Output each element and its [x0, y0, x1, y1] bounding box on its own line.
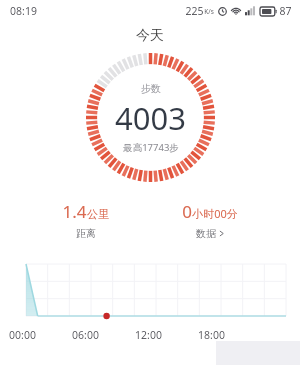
staticText: 12:00	[135, 328, 162, 342]
staticText: 00:00	[9, 328, 36, 342]
staticText: 数据	[196, 227, 216, 240]
staticText: K/s	[204, 7, 214, 16]
staticText: 小时00分	[192, 206, 238, 221]
button[interactable]: 0	[172, 198, 248, 242]
staticText: 距离	[76, 227, 96, 240]
staticText: 今天	[136, 27, 164, 45]
staticText: 最高17743步	[123, 141, 179, 154]
staticText: 08:19	[10, 4, 37, 18]
staticText: 0	[182, 200, 192, 223]
staticText: 4003	[115, 97, 186, 139]
button[interactable]: 1.4	[52, 198, 119, 242]
staticText: 步数	[141, 82, 161, 95]
staticText: 18:00	[198, 328, 225, 342]
staticText: 公里	[87, 207, 109, 221]
staticText: 1.4	[62, 200, 87, 223]
staticText: 06:00	[72, 328, 99, 342]
staticText: 225	[185, 4, 204, 18]
staticText: 87	[279, 4, 292, 18]
